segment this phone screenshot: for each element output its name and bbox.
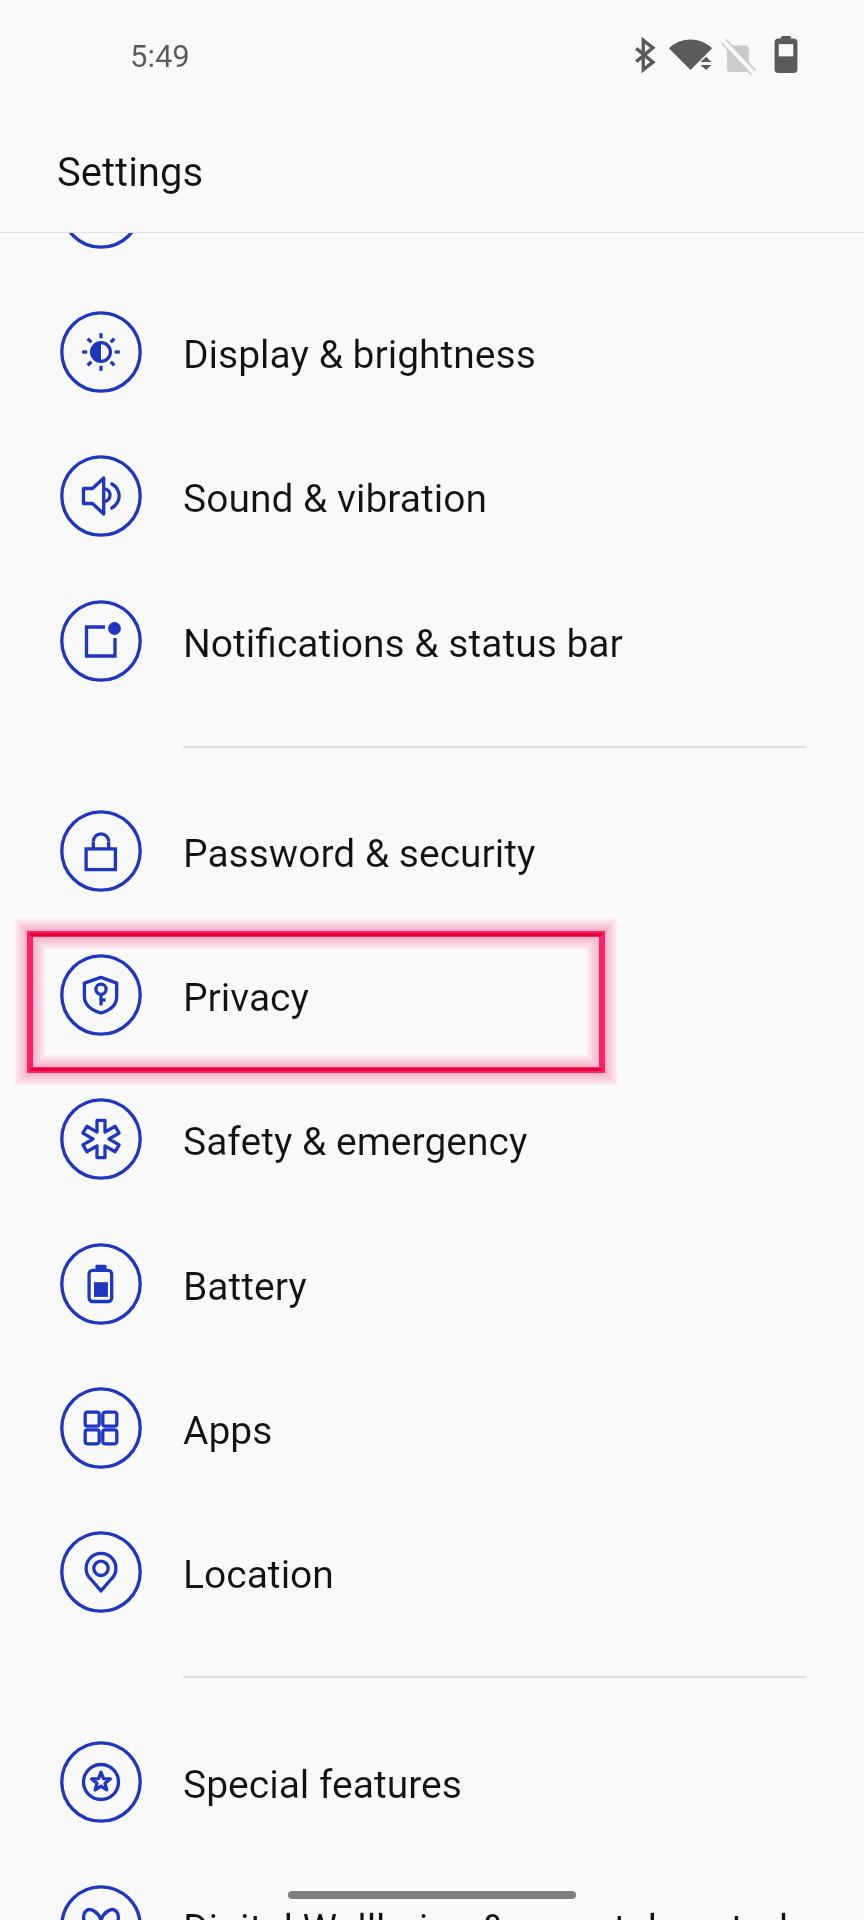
staticText: Safety & emergency — [183, 1119, 528, 1165]
button[interactable]: Connections — [0, 136, 864, 280]
button[interactable]: Sound & vibration — [0, 424, 864, 568]
staticText: Battery — [183, 1264, 307, 1310]
button[interactable]: Location — [0, 1500, 864, 1644]
staticText: Notifications & status bar — [183, 621, 623, 667]
staticText: 5:49 — [130, 38, 190, 74]
staticText: Sound & vibration — [183, 476, 488, 522]
button[interactable]: Apps — [0, 1356, 864, 1500]
button[interactable]: Privacy — [0, 923, 864, 1067]
button[interactable]: Battery — [0, 1212, 864, 1356]
button[interactable]: Privacy highlighted — [12, 916, 620, 1088]
staticText: Display & brightness — [183, 332, 536, 378]
button[interactable]: Notifications & status bar — [0, 569, 864, 713]
staticText: Special features — [183, 1762, 462, 1808]
staticText: Settings — [57, 149, 204, 196]
button[interactable]: Special features — [0, 1710, 864, 1854]
button[interactable]: Digital Wellbeing & parental controls — [0, 1854, 864, 1920]
button[interactable]: Safety & emergency — [0, 1067, 864, 1211]
staticText: Apps — [183, 1408, 273, 1454]
staticText: Location — [183, 1552, 334, 1598]
button[interactable]: Password & security — [0, 779, 864, 923]
staticText: Privacy — [183, 975, 309, 1021]
staticText: Digital Wellbeing & parental controls — [183, 1906, 809, 1920]
button[interactable]: Display & brightness — [0, 280, 864, 424]
staticText: Password & security — [183, 831, 536, 877]
staticText: Connections — [183, 185, 401, 231]
